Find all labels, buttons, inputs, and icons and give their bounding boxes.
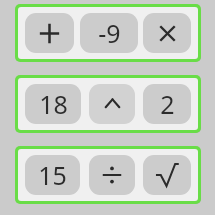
- staticText: -9: [98, 16, 121, 50]
- staticText: 15: [38, 158, 67, 192]
- button[interactable]: Divide: [89, 155, 135, 195]
- staticText: 18: [39, 87, 68, 121]
- button[interactable]: Square root: [143, 155, 191, 195]
- button[interactable]: Minus nine: [80, 13, 138, 53]
- button[interactable]: Power: [89, 84, 135, 124]
- staticText: 2: [160, 87, 175, 121]
- button[interactable]: Two: [143, 84, 191, 124]
- button[interactable]: Eighteen: [25, 84, 81, 124]
- button[interactable]: Plus: [25, 13, 74, 53]
- button[interactable]: Fifteen: [25, 155, 80, 195]
- button[interactable]: Multiply: [143, 13, 191, 53]
